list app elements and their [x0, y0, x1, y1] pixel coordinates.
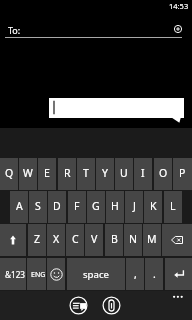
staticText: O	[159, 166, 168, 180]
button[interactable]: X	[47, 224, 65, 256]
staticText: Q	[5, 166, 14, 180]
staticText: Y	[102, 166, 108, 180]
button[interactable]: G	[87, 191, 105, 223]
button[interactable]: F	[68, 191, 86, 223]
button[interactable]: Q	[0, 158, 18, 190]
staticText: &123	[5, 269, 26, 280]
button[interactable]: B	[105, 224, 123, 256]
staticText: 14:53	[169, 1, 189, 11]
button[interactable]: K	[144, 191, 162, 223]
staticText: L	[170, 199, 176, 213]
staticText: To:	[8, 24, 21, 36]
staticText: .	[153, 267, 156, 281]
staticText: B	[111, 232, 118, 246]
button[interactable]: E	[38, 158, 56, 190]
staticText: J	[133, 199, 136, 213]
button[interactable]: Z	[28, 224, 46, 256]
button[interactable]: H	[106, 191, 124, 223]
staticText: U	[120, 166, 128, 180]
button[interactable]: T	[77, 158, 95, 190]
button[interactable]: ,	[126, 258, 144, 290]
staticText: S	[35, 199, 41, 213]
staticText: M	[147, 232, 157, 246]
button[interactable]: O	[154, 158, 172, 190]
button[interactable]: I	[134, 158, 152, 190]
staticText: G	[92, 199, 100, 213]
staticText: R	[64, 166, 71, 180]
button[interactable]: C	[66, 224, 84, 256]
button[interactable]: M	[143, 224, 161, 256]
button[interactable]: Send message	[68, 295, 89, 316]
staticText: ENG	[31, 270, 46, 280]
staticText: K	[150, 199, 157, 213]
button[interactable]: V	[85, 224, 103, 256]
staticText: space	[83, 268, 109, 281]
button[interactable]: J	[125, 191, 143, 223]
button[interactable]: Backspace	[162, 224, 192, 256]
staticText: W	[23, 166, 33, 180]
staticText: X	[53, 232, 60, 246]
button[interactable]: U	[115, 158, 133, 190]
button[interactable]: D	[48, 191, 66, 223]
button[interactable]: P	[173, 158, 192, 190]
button[interactable]: More options	[169, 291, 187, 304]
staticText: A	[16, 199, 23, 213]
button[interactable]: &123	[0, 258, 26, 290]
staticText: V	[91, 232, 98, 246]
button[interactable]: R	[58, 158, 76, 190]
staticText: N	[129, 232, 137, 246]
button[interactable]: Emoji	[47, 258, 65, 290]
button[interactable]: A	[10, 191, 28, 223]
button[interactable]: S	[29, 191, 47, 223]
staticText: P	[179, 166, 186, 180]
staticText: Z	[34, 232, 41, 246]
staticText: I	[141, 166, 145, 180]
button[interactable]: Add recipient	[170, 21, 186, 37]
staticText: D	[53, 199, 61, 213]
staticText: ,	[134, 267, 137, 281]
staticText: T	[83, 166, 89, 180]
staticText: C	[72, 232, 79, 246]
button[interactable]: N	[124, 224, 142, 256]
button[interactable]: Shift	[0, 224, 26, 256]
button[interactable]: Attach	[101, 295, 122, 316]
button[interactable]: .	[145, 258, 163, 290]
button[interactable]: space	[67, 258, 125, 290]
button[interactable]: ENG	[27, 258, 46, 290]
button[interactable]: W	[19, 158, 37, 190]
staticText: H	[111, 199, 119, 213]
button[interactable]: L	[164, 191, 182, 223]
staticText: E	[44, 166, 50, 180]
button[interactable]: Y	[96, 158, 114, 190]
staticText: F	[74, 199, 80, 213]
button[interactable]: Enter	[165, 258, 192, 290]
